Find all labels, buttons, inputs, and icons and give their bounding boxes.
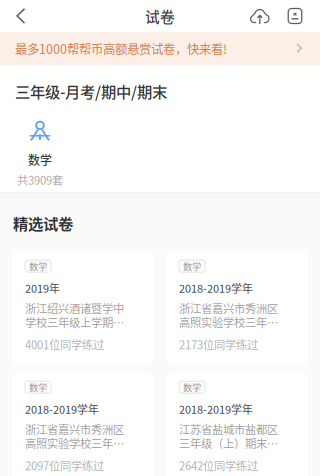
button[interactable]: 最多1000帮帮币高额悬赏试卷，快来看! <box>0 32 320 65</box>
staticText: 高照实验学校三年… <box>25 435 124 451</box>
button[interactable]: 数学 <box>0 119 80 188</box>
staticText: 精选试卷 <box>13 212 73 234</box>
staticText: 2018-2019学年 <box>25 401 99 417</box>
button[interactable]: 数学 <box>12 372 154 476</box>
button[interactable]: Upload a paper <box>242 0 278 32</box>
button[interactable]: 数学 <box>12 251 154 364</box>
button[interactable]: 数学 <box>166 251 308 364</box>
staticText: 数学 <box>29 380 47 394</box>
button[interactable]: 数学 <box>166 372 308 476</box>
staticText: 4001位同学练过 <box>25 336 104 352</box>
staticText: 浙江省嘉兴市秀洲区 <box>179 300 278 316</box>
staticText: 数学 <box>183 259 201 273</box>
staticText: 2018-2019学年 <box>179 280 253 296</box>
staticText: 2018-2019学年 <box>179 401 253 417</box>
staticText: 数学 <box>183 380 201 394</box>
button[interactable]: Back <box>0 0 41 32</box>
staticText: 2642位同学练过 <box>179 457 258 473</box>
staticText: 2173位同学练过 <box>179 336 258 352</box>
staticText: 学校三年级上学期… <box>25 314 124 330</box>
staticText: 2019年 <box>25 280 60 296</box>
staticText: 2097位同学练过 <box>25 457 104 473</box>
staticText: 试卷 <box>145 5 175 27</box>
staticText: 浙江绍兴酒诸暨学中 <box>25 300 124 316</box>
staticText: 共3909套 <box>17 172 63 188</box>
staticText: 最多1000帮帮币高额悬赏试卷，快来看! <box>15 39 227 57</box>
staticText: 高照实验学校三年… <box>179 314 278 330</box>
staticText: 浙江省嘉兴市秀洲区 <box>25 421 124 437</box>
staticText: 数学 <box>28 151 52 169</box>
staticText: 江苏省盐城市盐都区 <box>179 421 278 437</box>
staticText: 三年级-月考/期中/期末 <box>15 80 167 102</box>
staticText: 三年级（上）期末… <box>179 435 278 451</box>
button[interactable]: My papers <box>278 0 312 32</box>
staticText: 数学 <box>29 259 47 273</box>
